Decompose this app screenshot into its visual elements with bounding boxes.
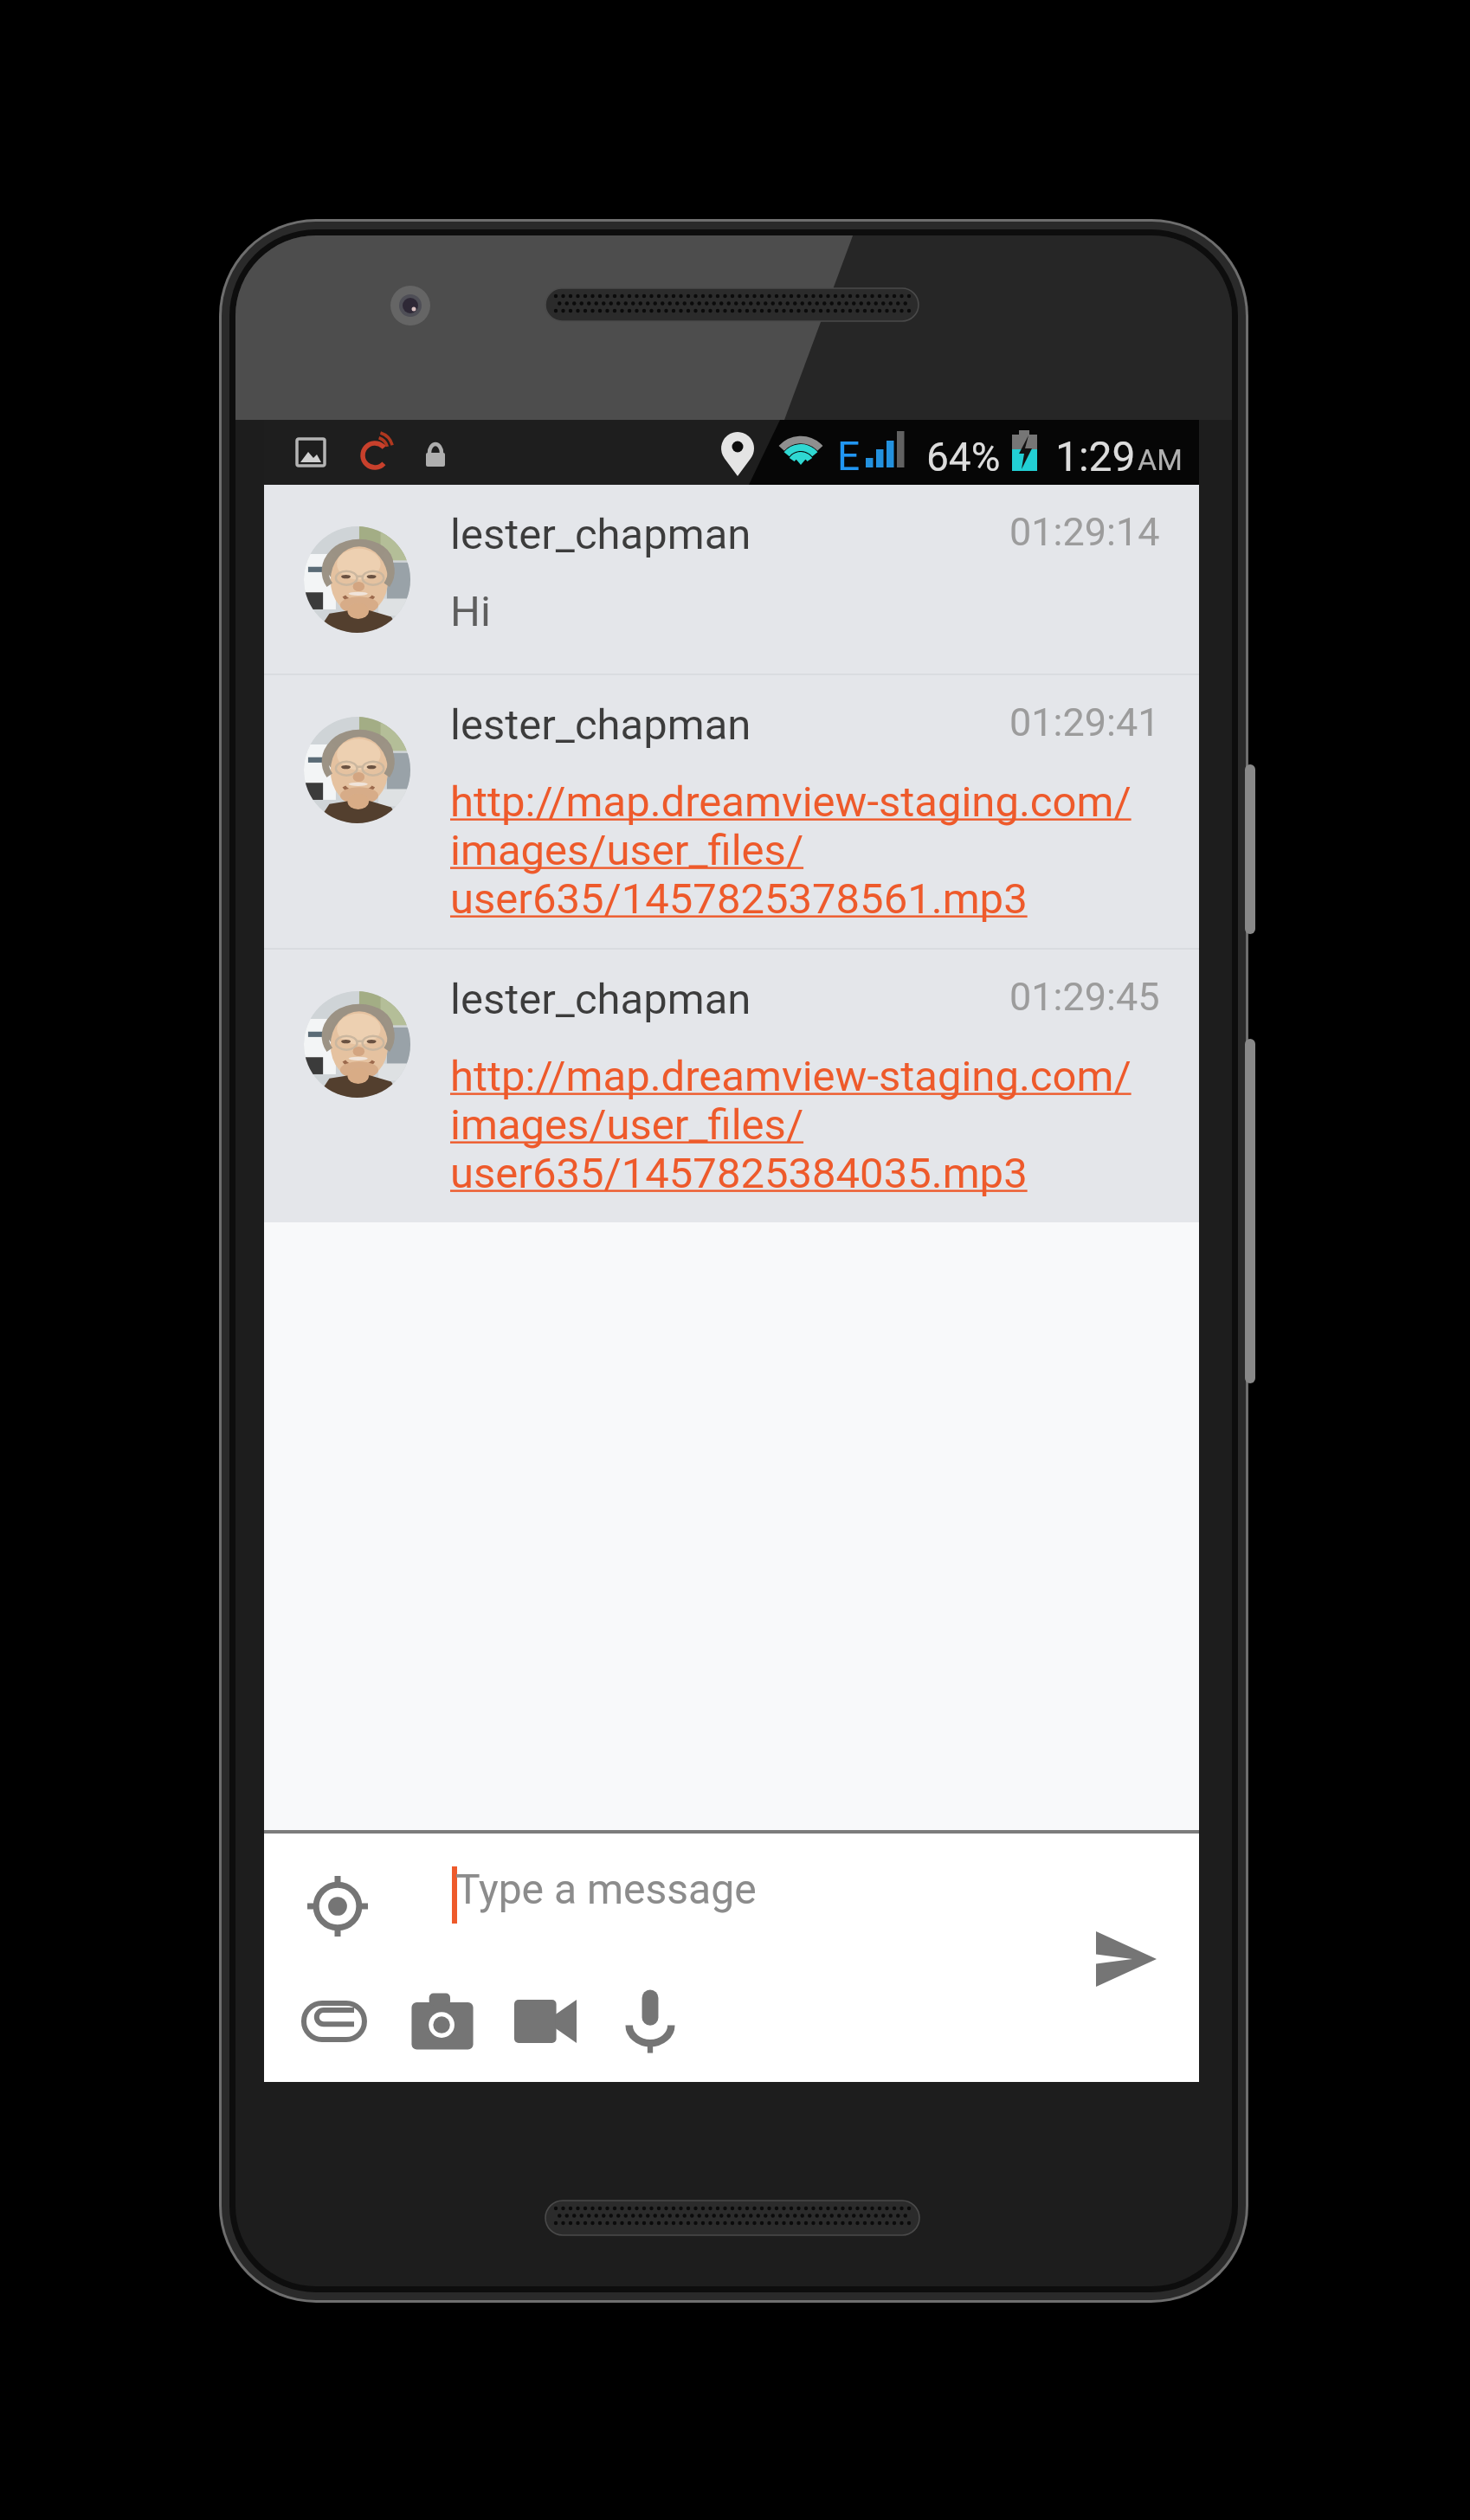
button[interactable]: Send	[1096, 1931, 1157, 1987]
button[interactable]: Record video	[506, 1982, 584, 2060]
button[interactable]: lester_chapman	[264, 950, 1199, 1222]
staticText: lester_chapman	[450, 700, 751, 750]
staticText: user635/1457825384035.mp3	[450, 1149, 1028, 1197]
button[interactable]: lester_chapman	[264, 675, 1199, 948]
staticText: AM	[1138, 442, 1183, 477]
button[interactable]: http://map.dreamview-staging.com/	[450, 1052, 1132, 1197]
button[interactable]: Record audio	[611, 1982, 689, 2060]
staticText: lester_chapman	[450, 510, 751, 559]
button[interactable]: Type a message	[394, 1849, 1052, 1941]
staticText: lester_chapman	[450, 975, 751, 1024]
staticText: 1:29	[1055, 432, 1136, 480]
button[interactable]: lester_chapman	[264, 485, 1199, 674]
staticText: E	[837, 433, 861, 480]
button[interactable]: Take photo	[403, 1982, 481, 2060]
staticText: 01:29:45	[1009, 974, 1160, 1020]
staticText: 01:29:41	[1009, 699, 1160, 745]
button[interactable]: Attach file	[300, 1982, 377, 2060]
button[interactable]: http://map.dreamview-staging.com/	[450, 777, 1132, 923]
staticText: images/user_files/	[450, 1100, 804, 1149]
staticText: Hi	[450, 587, 491, 636]
button[interactable]: Share my location	[307, 1876, 368, 1937]
staticText: http://map.dreamview-staging.com/	[450, 777, 1132, 826]
staticText: Type a message	[455, 1865, 757, 1913]
staticText: 64%	[926, 434, 1001, 480]
staticText: user635/1457825378561.mp3	[450, 874, 1028, 923]
staticText: images/user_files/	[450, 826, 804, 874]
staticText: http://map.dreamview-staging.com/	[450, 1052, 1132, 1100]
staticText: 01:29:14	[1009, 509, 1160, 555]
